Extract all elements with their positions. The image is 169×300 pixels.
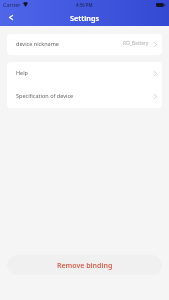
- button[interactable]: Specification of device: [7, 85, 162, 108]
- staticText: device nickname: [16, 40, 59, 47]
- staticText: Remove binding: [57, 261, 113, 271]
- staticText: Carrier: [3, 1, 21, 8]
- button[interactable]: Help: [7, 62, 162, 85]
- staticText: 4:56 PM: [76, 2, 93, 8]
- button[interactable]: device nickname: [7, 34, 162, 55]
- button[interactable]: Back: [0, 10, 22, 26]
- staticText: Help: [16, 69, 28, 76]
- staticText: Specification of device: [16, 92, 74, 99]
- button[interactable]: Remove binding: [7, 255, 162, 275]
- staticText: Settings: [70, 13, 100, 23]
- staticText: RO_Battery: [123, 40, 149, 47]
